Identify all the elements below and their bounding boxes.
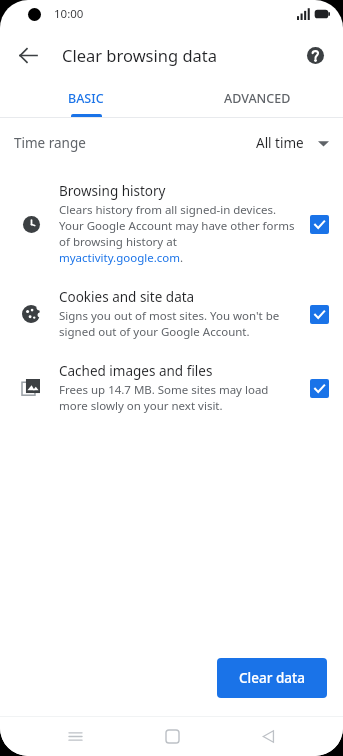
button[interactable]: Checkbox checked	[310, 379, 329, 398]
button[interactable]: Cookies and site data	[0, 288, 343, 340]
staticText: Cookies and site data	[59, 288, 195, 306]
staticText: BASIC	[68, 90, 104, 107]
button[interactable]: BASIC	[0, 79, 171, 117]
button[interactable]: Home	[150, 716, 194, 756]
button[interactable]: Checkbox checked	[310, 215, 329, 234]
button[interactable]: Recent apps	[53, 716, 97, 756]
staticText: Clear browsing data	[62, 44, 218, 66]
staticText: Frees up 14.7 MB. Some sites may load mo…	[59, 382, 300, 414]
staticText: Cached images and files	[59, 362, 213, 380]
button[interactable]: Time range	[0, 118, 343, 168]
button[interactable]: Back	[246, 716, 290, 756]
button[interactable]: Cached images and files	[0, 362, 343, 414]
staticText: Clears history from all signed-in device…	[59, 202, 300, 266]
staticText: Browsing history	[59, 182, 166, 200]
button[interactable]: Checkbox checked	[310, 305, 329, 324]
staticText: Signs you out of most sites. You won't b…	[59, 308, 300, 340]
staticText: 10:00	[54, 6, 84, 22]
staticText: All time	[256, 134, 304, 152]
staticText: Time range	[14, 134, 86, 152]
staticText: Clear data	[239, 669, 305, 687]
button[interactable]: Help	[295, 35, 335, 75]
button[interactable]: Back	[8, 35, 48, 75]
button[interactable]: ADVANCED	[171, 79, 343, 117]
button[interactable]: Browsing history	[0, 182, 343, 266]
button[interactable]: Clear data	[217, 658, 327, 698]
staticText: ADVANCED	[224, 90, 291, 107]
